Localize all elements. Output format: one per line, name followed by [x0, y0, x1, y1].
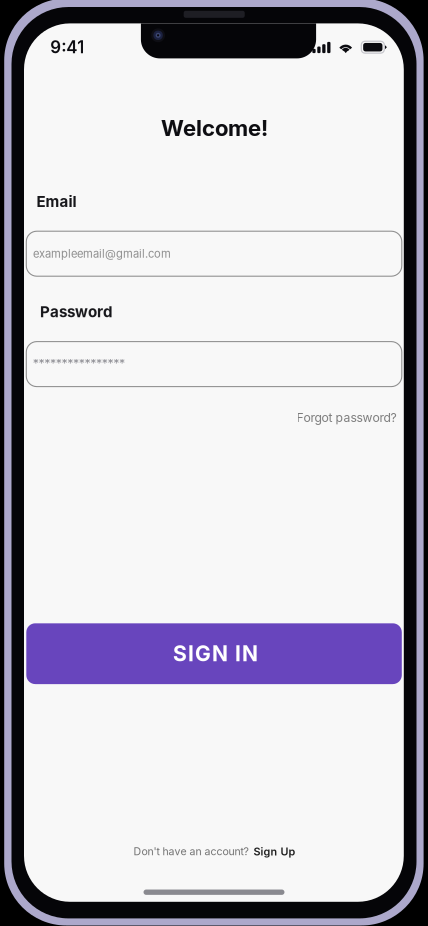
staticText: 9:41	[50, 37, 84, 57]
button[interactable]: Sign Up	[254, 845, 296, 858]
staticText: Password	[40, 303, 112, 321]
button[interactable]: Password	[26, 342, 402, 387]
staticText: SIGN IN	[173, 641, 258, 666]
staticText: Sign Up	[254, 845, 296, 858]
staticText: Don't have an account?	[134, 845, 249, 858]
staticText: Email	[36, 193, 76, 210]
button[interactable]: Email address	[26, 231, 402, 276]
staticText: Welcome!	[161, 115, 268, 141]
staticText: exampleemail@gmail.com	[33, 247, 171, 260]
staticText: ****************	[33, 357, 125, 371]
staticText: Forgot password?	[296, 410, 396, 425]
button[interactable]: SIGN IN	[26, 623, 402, 684]
button[interactable]: Forgot password?	[292, 406, 400, 429]
